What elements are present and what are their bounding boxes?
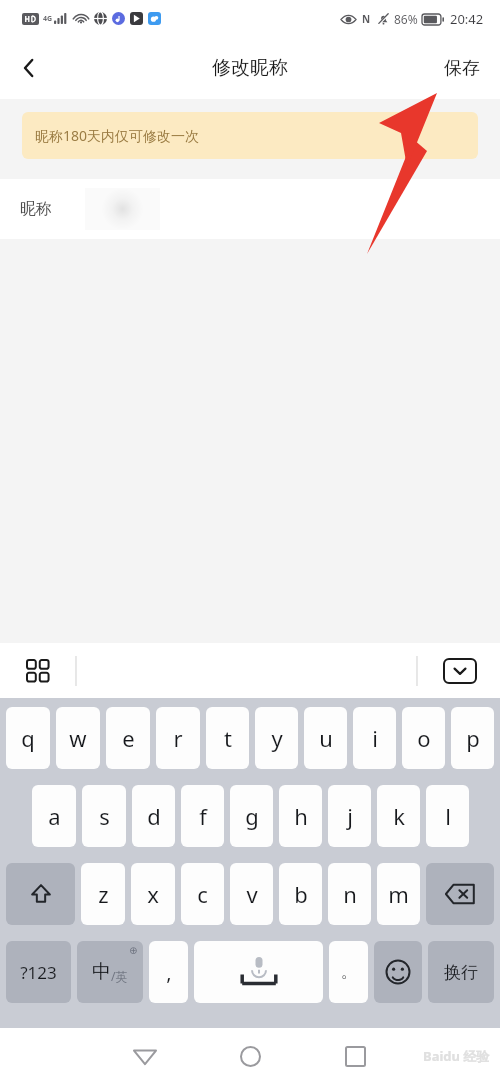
staticText: ⊕ <box>129 945 138 957</box>
button[interactable]: s <box>82 785 126 847</box>
staticText: 。 <box>341 962 357 982</box>
button[interactable]: n <box>328 863 371 925</box>
staticText: q <box>21 723 35 753</box>
button[interactable]: o <box>402 707 445 769</box>
button[interactable]: v <box>230 863 273 925</box>
staticText: i <box>372 723 378 753</box>
button[interactable]: h <box>279 785 322 847</box>
button[interactable]: y <box>255 707 298 769</box>
staticText: k <box>393 801 405 831</box>
button[interactable]: b <box>279 863 322 925</box>
button[interactable]: t <box>206 707 249 769</box>
button[interactable]: q <box>6 707 50 769</box>
staticText: p <box>466 723 480 753</box>
button[interactable]: d <box>132 785 175 847</box>
button[interactable]: ?123 <box>6 941 71 1003</box>
button[interactable]: 换行 <box>428 941 494 1003</box>
staticText: a <box>48 801 61 831</box>
staticText: 保存 <box>444 57 480 80</box>
staticText: y <box>271 723 283 753</box>
staticText: 20:42 <box>450 10 484 28</box>
staticText: l <box>445 801 451 831</box>
button[interactable]: m <box>377 863 420 925</box>
staticText: g <box>245 801 259 831</box>
staticText: v <box>246 879 258 909</box>
staticText: ?123 <box>20 961 57 984</box>
staticText: x <box>147 879 159 909</box>
button[interactable]: x <box>131 863 175 925</box>
staticText: h <box>294 801 308 831</box>
button[interactable]: 保存 <box>424 47 500 90</box>
button[interactable]: Keyboard layouts <box>18 651 58 691</box>
button[interactable]: Recents <box>331 1032 379 1080</box>
button[interactable]: c <box>181 863 224 925</box>
button[interactable]: z <box>81 863 125 925</box>
button[interactable]: r <box>156 707 200 769</box>
staticText: 昵称 <box>20 199 52 219</box>
staticText: e <box>122 723 135 753</box>
staticText: 换行 <box>444 962 478 983</box>
staticText: Baidu 经验 <box>423 1047 490 1065</box>
button[interactable]: Hide keyboard <box>438 649 482 693</box>
staticText: r <box>173 723 183 753</box>
button[interactable]: i <box>353 707 396 769</box>
staticText: 修改昵称 <box>212 56 288 80</box>
staticText: /英 <box>111 968 128 984</box>
button[interactable]: k <box>377 785 420 847</box>
staticText: o <box>417 723 431 753</box>
button[interactable]: Back <box>121 1032 169 1080</box>
staticText: u <box>319 723 333 753</box>
button[interactable] <box>426 863 494 925</box>
staticText: 中 <box>92 960 111 984</box>
button[interactable]: Home <box>226 1032 274 1080</box>
staticText: b <box>294 879 308 909</box>
button[interactable]: l <box>426 785 469 847</box>
staticText: s <box>99 801 110 831</box>
button[interactable]: 。 <box>329 941 368 1003</box>
button[interactable]: , <box>149 941 188 1003</box>
staticText: j <box>347 801 353 831</box>
staticText: w <box>69 723 87 753</box>
staticText: 4G <box>43 14 53 24</box>
staticText: N <box>362 12 371 26</box>
button[interactable]: w <box>56 707 100 769</box>
button[interactable] <box>374 941 422 1003</box>
staticText: n <box>343 879 357 909</box>
button[interactable]: u <box>304 707 347 769</box>
staticText: 86% <box>394 11 418 27</box>
staticText: c <box>197 879 208 909</box>
staticText: , <box>166 959 172 986</box>
button[interactable] <box>194 941 323 1003</box>
button[interactable]: p <box>451 707 494 769</box>
button[interactable]: e <box>106 707 150 769</box>
staticText: 昵称180天内仅可修改一次 <box>35 126 200 145</box>
button[interactable]: f <box>181 785 224 847</box>
button[interactable]: 中 <box>77 941 143 1003</box>
button[interactable] <box>6 863 75 925</box>
staticText: z <box>98 879 109 909</box>
staticText: m <box>388 879 409 909</box>
button[interactable]: g <box>230 785 273 847</box>
button[interactable]: a <box>32 785 76 847</box>
staticText: d <box>147 801 161 831</box>
staticText: f <box>199 801 207 831</box>
button[interactable]: Back <box>0 39 58 97</box>
button[interactable]: j <box>328 785 371 847</box>
staticText: t <box>224 723 232 753</box>
